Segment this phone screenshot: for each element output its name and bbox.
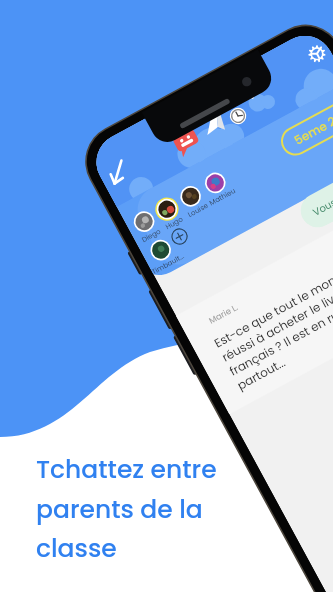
staticText: Tchattez entre parents de la classe	[36, 452, 217, 565]
